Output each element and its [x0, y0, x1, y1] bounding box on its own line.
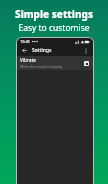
button[interactable]: More options — [81, 46, 90, 55]
button[interactable]: Back — [20, 46, 29, 55]
staticText: Simple settings — [0, 7, 108, 21]
button[interactable]: Vibrate — [17, 56, 93, 70]
button[interactable]: Vibrate toggle — [83, 60, 90, 67]
staticText: Settings — [32, 47, 52, 54]
staticText: 10:45 — [20, 39, 30, 44]
staticText: When the sound is playing — [20, 64, 63, 69]
staticText: Easy to customise — [0, 22, 108, 34]
staticText: Vibrate — [20, 57, 36, 63]
